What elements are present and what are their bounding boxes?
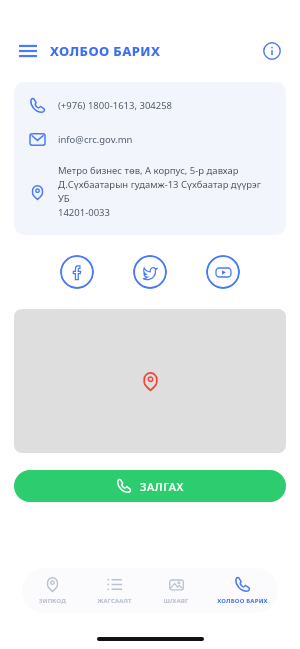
button[interactable]: ЗИПКОД [22,568,83,613]
button[interactable]: Map [14,309,286,453]
staticText: Метро бизнес төв, А корпус, 5-р давхар Д… [58,164,274,219]
staticText: ХОЛБОО БАРИХ [50,42,161,60]
staticText: ЗАЛГАХ [140,479,184,494]
staticText: Ш/ХАЯГ [163,597,189,605]
button[interactable]: Ш/ХАЯГ [145,568,207,613]
button[interactable]: Facebook [60,255,94,289]
staticText: ЖАГСААЛТ [97,597,132,605]
button[interactable]: Twitter [133,255,167,289]
staticText: (+976) 1800-1613, 304258 [58,99,173,112]
button[interactable]: ХОЛБОО БАРИХ [207,568,278,613]
button[interactable]: YouTube [206,255,240,289]
staticText: ЗИПКОД [39,597,66,605]
button[interactable]: ЗАЛГАХ [14,470,286,502]
staticText: ХОЛБОО БАРИХ [217,597,268,605]
button[interactable]: ЖАГСААЛТ [83,568,145,613]
button[interactable]: Information [260,39,284,63]
button[interactable]: Menu [16,39,40,63]
staticText: info@crc.gov.mn [58,133,133,146]
